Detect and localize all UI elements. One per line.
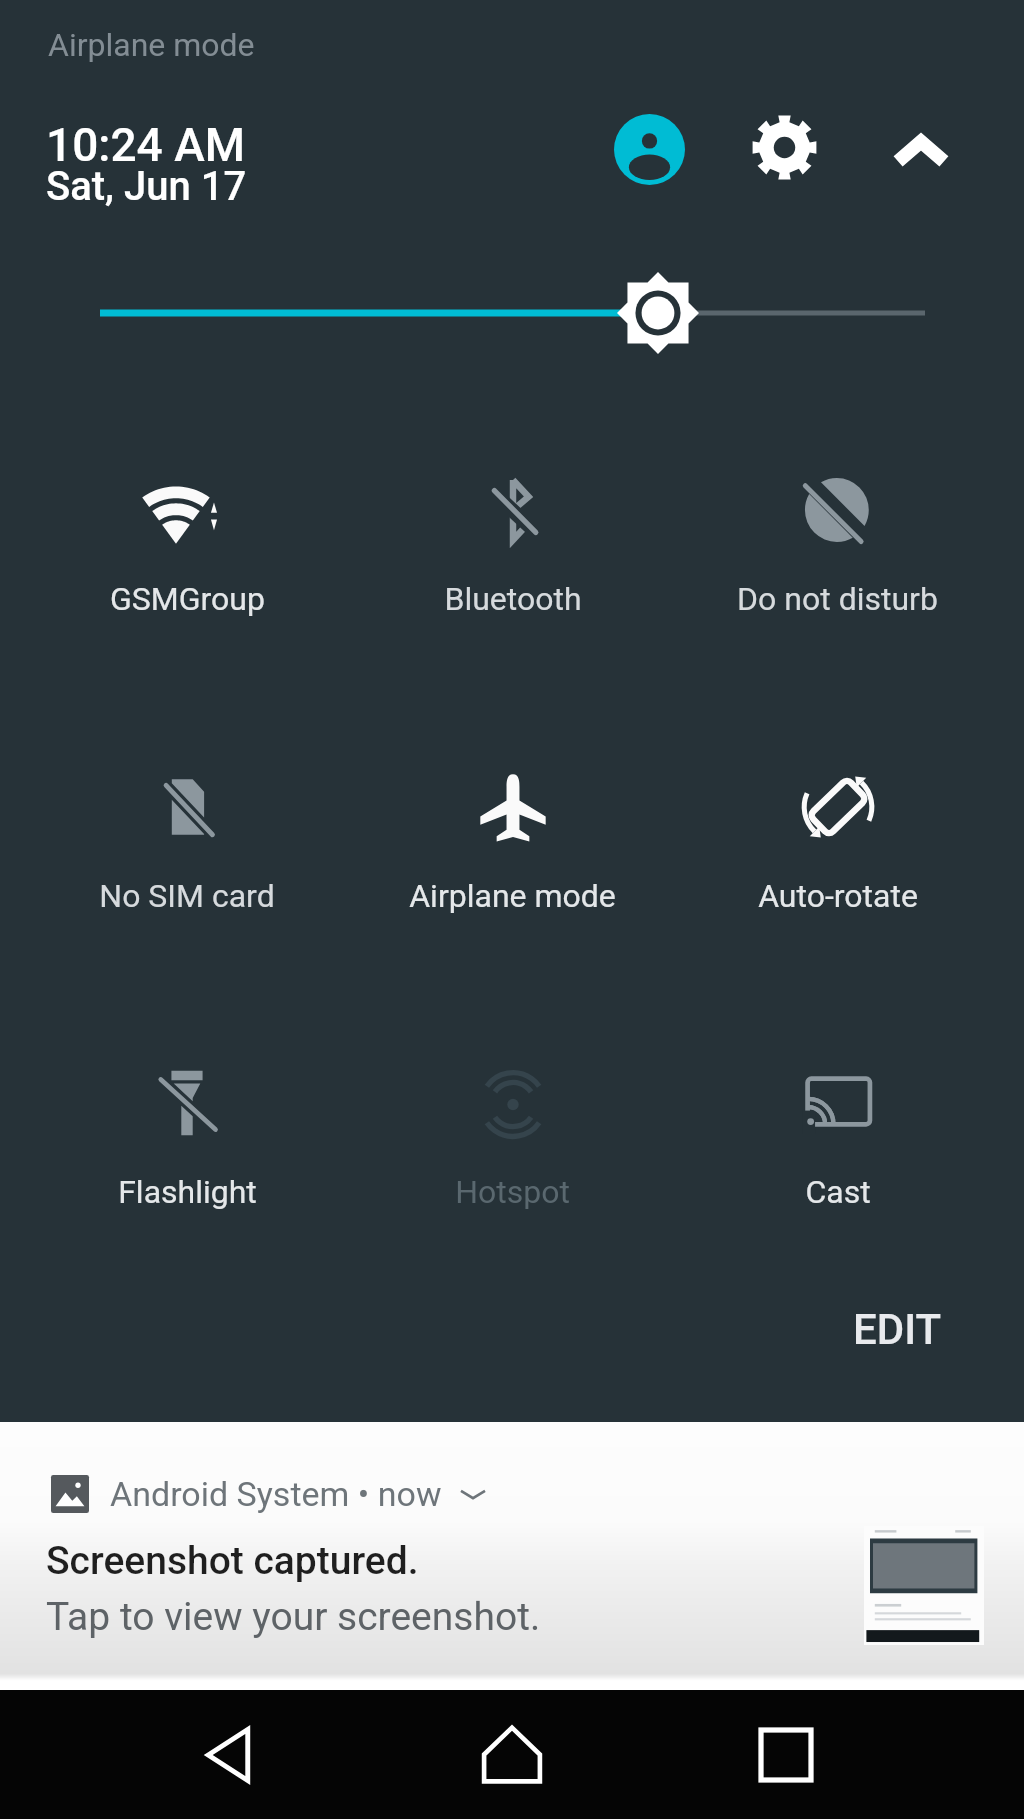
button[interactable]: EDIT [807,1281,1024,1378]
button[interactable]: User profile [607,107,691,191]
button[interactable]: Cast [675,1055,1000,1211]
staticText: Cast [805,1173,871,1211]
staticText: Screenshot captured. [46,1538,419,1584]
button[interactable]: No SIM card [24,759,350,915]
staticText: Auto-rotate [758,877,918,915]
staticText: Sat, Jun 17 [46,163,247,210]
staticText: Tap to view your screenshot. [46,1594,541,1640]
staticText: Android System • now [110,1474,442,1514]
button[interactable]: Flashlight [24,1055,350,1211]
button[interactable]: Recents [716,1690,856,1819]
button[interactable]: Settings [742,105,826,189]
button[interactable]: Airplane mode [350,759,675,915]
staticText: GSMGroup [110,580,265,618]
button[interactable]: Brightness [0,258,1024,368]
staticText: Airplane mode [409,877,616,915]
button[interactable]: Do not disturb [675,462,1000,618]
staticText: Flashlight [118,1173,257,1211]
staticText: Hotspot [455,1173,570,1211]
staticText: 10:24 AM [46,118,245,172]
button[interactable]: Back [158,1690,298,1819]
staticText: No SIM card [99,877,275,915]
button[interactable]: Auto-rotate [675,759,1000,915]
staticText: EDIT [853,1305,942,1354]
button[interactable]: Home [442,1690,582,1819]
button[interactable]: Hotspot [350,1055,675,1211]
staticText: Do not disturb [737,580,938,618]
button[interactable]: Bluetooth [350,462,675,618]
button[interactable]: Android System • now [0,1422,1024,1690]
staticText: Bluetooth [444,580,582,618]
staticText: Airplane mode [48,26,255,64]
button[interactable]: GSMGroup [24,462,350,618]
button[interactable]: Collapse [879,109,963,193]
